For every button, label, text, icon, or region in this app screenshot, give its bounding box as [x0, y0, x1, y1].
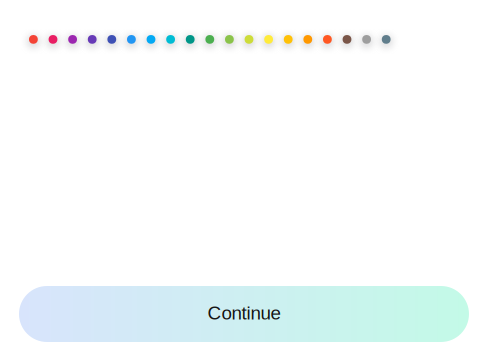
staticText: Continue	[207, 302, 280, 323]
button[interactable]: Continue	[19, 286, 469, 342]
